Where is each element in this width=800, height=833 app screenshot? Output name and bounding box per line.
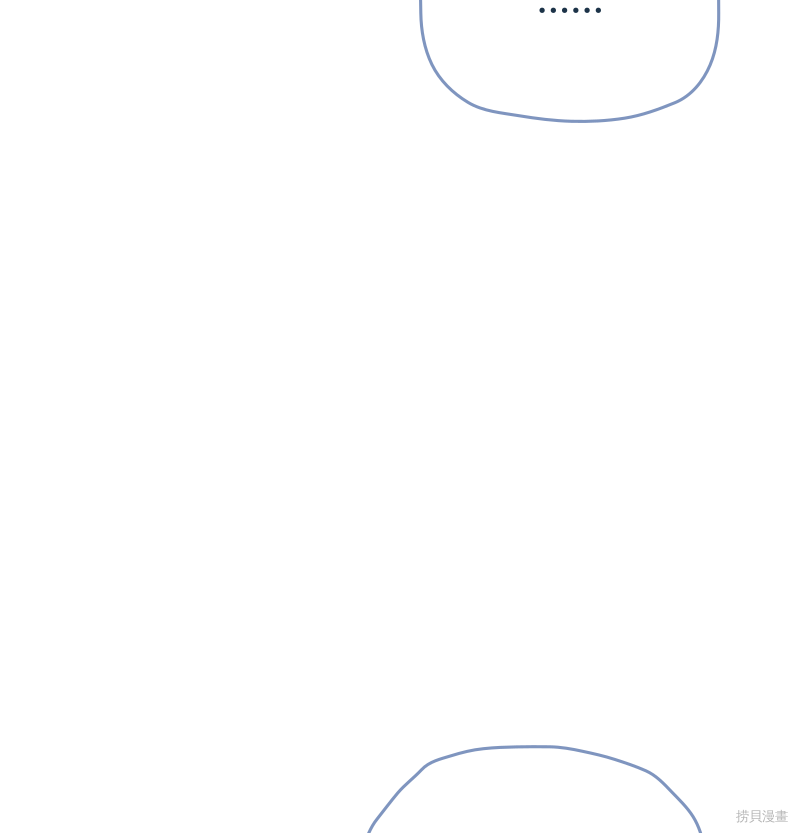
staticText: 捞貝漫畫 <box>736 808 788 825</box>
